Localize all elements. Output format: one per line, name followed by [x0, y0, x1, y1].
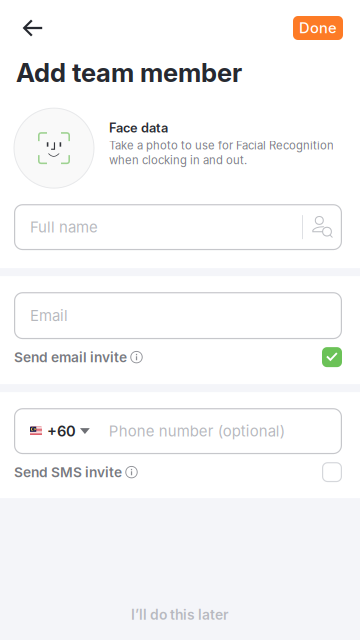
staticText: Full name	[30, 218, 98, 236]
staticText: Send email invite	[14, 349, 127, 365]
staticText: I’ll do this later	[131, 606, 229, 623]
button[interactable]: Full name	[14, 204, 342, 250]
button[interactable]: +60	[14, 408, 342, 454]
button[interactable]: Done	[293, 16, 343, 40]
button[interactable]: Send email invite	[0, 344, 360, 370]
staticText: Face data	[109, 120, 168, 136]
button[interactable]: Add face data photo	[14, 108, 94, 188]
staticText: Email	[30, 307, 68, 325]
staticText: Phone number (optional)	[109, 422, 285, 440]
staticText: Send SMS invite	[14, 464, 122, 480]
button[interactable]: I’ll do this later	[87, 597, 273, 632]
staticText: Take a photo to use for Facial Recogniti…	[109, 139, 334, 167]
staticText: Done	[299, 19, 337, 37]
button[interactable]: Email	[14, 292, 342, 339]
staticText: Add team member	[16, 57, 242, 88]
staticText: +60	[47, 422, 76, 440]
button[interactable]: Send SMS invite	[0, 459, 360, 485]
button[interactable]: Back	[0, 9, 57, 47]
